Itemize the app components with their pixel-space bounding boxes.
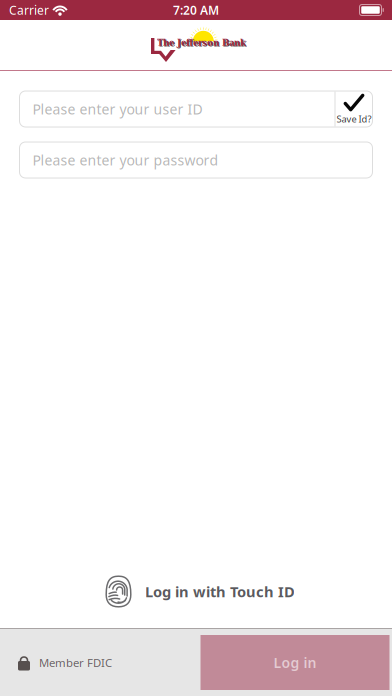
staticText: 7:20 AM bbox=[173, 2, 219, 18]
staticText: The Jefferson Bank bbox=[158, 38, 247, 49]
staticText: Member FDIC bbox=[39, 655, 112, 670]
button[interactable]: Log in bbox=[198, 629, 392, 696]
staticText: The Jefferson Bank bbox=[157, 37, 246, 48]
button[interactable]: Save Id bbox=[335, 91, 372, 126]
staticText: Save Id? bbox=[336, 112, 371, 125]
button[interactable]: Log in with Touch ID bbox=[99, 573, 301, 610]
staticText: Log in bbox=[273, 653, 316, 672]
staticText: Carrier bbox=[9, 2, 49, 18]
staticText: Please enter your password bbox=[32, 150, 218, 170]
staticText: Log in with Touch ID bbox=[145, 581, 295, 601]
button[interactable]: Member FDIC bbox=[0, 629, 198, 696]
staticText: Please enter your user ID bbox=[32, 99, 202, 119]
